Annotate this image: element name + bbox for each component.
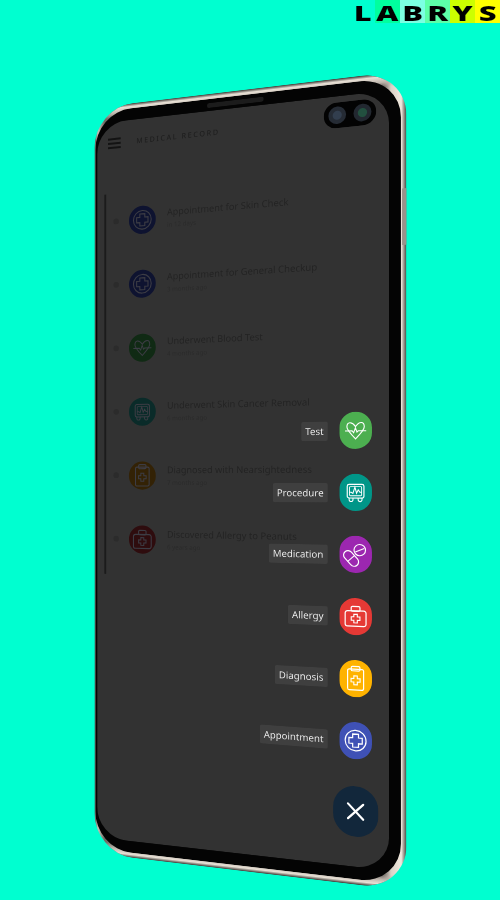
staticText: A: [376, 0, 399, 24]
staticText: MEDICAL RECORD: [136, 126, 220, 145]
staticText: Y: [452, 0, 474, 24]
staticText: B: [402, 0, 424, 24]
button[interactable]: Test: [301, 399, 372, 462]
button[interactable]: Appointment for Skin Check: [97, 164, 389, 255]
staticText: Allergy: [292, 608, 324, 622]
staticText: Appointment for General Checkup: [167, 260, 317, 283]
staticText: R: [427, 0, 449, 24]
staticText: L: [354, 0, 372, 24]
button[interactable]: Appointment for General Checkup: [97, 233, 389, 318]
staticText: Underwent Skin Cancer Removal: [167, 395, 310, 412]
button[interactable]: Open navigation menu: [102, 128, 127, 158]
button[interactable]: Close menu: [333, 784, 378, 839]
button[interactable]: Allergy: [288, 583, 372, 648]
button[interactable]: Discovered Allergy to Peanuts: [97, 507, 389, 578]
button[interactable]: Diagnosed with Nearsightedness: [97, 440, 389, 509]
button[interactable]: Medication: [269, 522, 372, 586]
button[interactable]: Underwent Blood Test: [97, 302, 389, 381]
button[interactable]: Diagnosis: [275, 644, 372, 711]
staticText: Test: [305, 425, 324, 438]
staticText: Discovered Allergy to Peanuts: [167, 528, 297, 543]
staticText: Procedure: [277, 486, 324, 499]
button[interactable]: Appointment: [260, 703, 372, 773]
staticText: Underwent Blood Test: [167, 330, 263, 347]
staticText: Appointment for Skin Check: [167, 195, 289, 218]
staticText: Medication: [273, 547, 324, 561]
button[interactable]: Underwent Skin Cancer Removal: [97, 371, 389, 444]
staticText: Diagnosed with Nearsightedness: [167, 463, 312, 476]
button[interactable]: Procedure: [273, 461, 372, 524]
staticText: S: [479, 0, 497, 24]
staticText: Diagnosis: [279, 668, 324, 684]
staticText: Appointment: [264, 728, 324, 745]
